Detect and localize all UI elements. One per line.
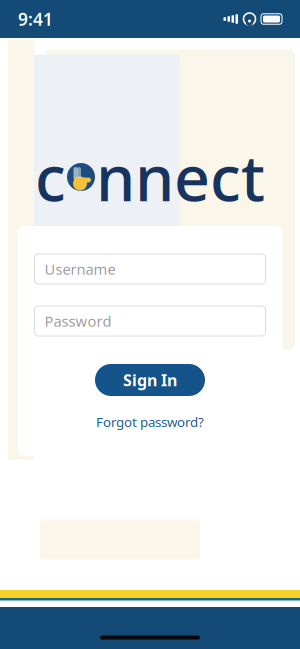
staticText: Sign In	[123, 369, 177, 391]
staticText: nnect	[96, 135, 265, 219]
staticText: 9:41	[18, 7, 53, 30]
staticText: c	[35, 135, 66, 219]
staticText: Forgot password?	[96, 413, 204, 431]
staticText: Username	[44, 259, 115, 279]
staticText: Password	[44, 311, 111, 331]
button[interactable]: Sign In	[95, 364, 205, 396]
button[interactable]: Forgot password?	[90, 410, 210, 434]
